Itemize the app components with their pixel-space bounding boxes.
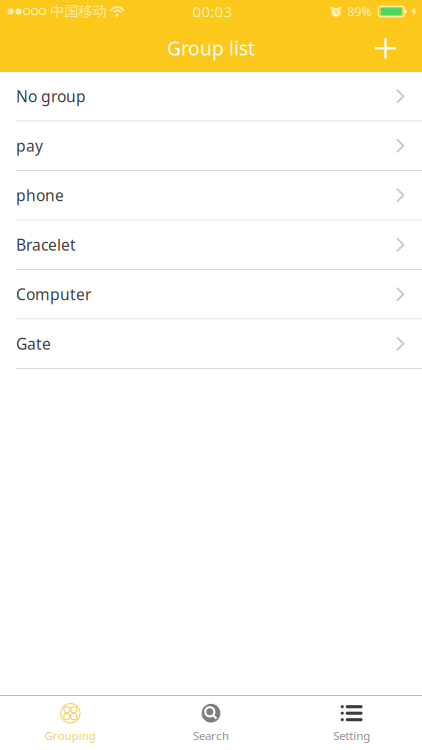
button[interactable]: No group (0, 72, 422, 121)
staticText: pay (16, 135, 43, 156)
button[interactable]: Grouping (0, 696, 141, 750)
button[interactable]: Gate (0, 319, 422, 369)
staticText: Gate (16, 333, 51, 354)
button[interactable]: phone (0, 171, 422, 220)
staticText: Group list (167, 35, 255, 61)
button[interactable]: Add group (361, 23, 422, 72)
staticText: 00:03 (192, 1, 232, 22)
button[interactable]: Search (141, 696, 281, 750)
staticText: Setting (333, 728, 370, 743)
button[interactable]: Setting (281, 696, 422, 750)
staticText: No group (16, 86, 86, 107)
button[interactable]: Computer (0, 270, 422, 319)
staticText: 中国移动 (50, 2, 106, 20)
staticText: Computer (16, 284, 91, 305)
staticText: phone (16, 185, 64, 206)
staticText: 89% (347, 3, 371, 20)
staticText: Search (193, 728, 229, 743)
button[interactable]: pay (0, 121, 422, 171)
button[interactable]: Bracelet (0, 220, 422, 270)
staticText: Bracelet (16, 234, 76, 255)
staticText: Grouping (45, 728, 96, 743)
